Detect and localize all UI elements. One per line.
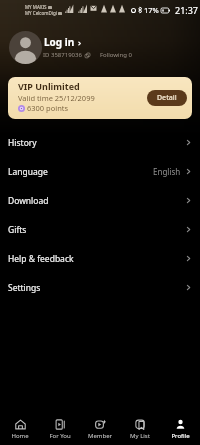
staticText: Settings [8,282,41,294]
button[interactable]: Profile [160,419,200,440]
staticText: Download [8,195,49,207]
staticText: 21:37 [175,4,199,16]
other: Copy ID [85,53,90,58]
button[interactable]: Language [0,157,200,186]
staticText: Profile [171,432,190,440]
staticText: 6300 points [27,103,69,113]
staticText: Gifts [8,224,27,236]
staticText: 17% [144,5,159,15]
staticText: ID 358719036 [43,51,82,59]
button[interactable]: My List [120,419,160,440]
button[interactable]: For You [40,419,80,440]
staticText: MY MAXIS [25,4,47,10]
staticText: English [153,166,181,177]
staticText: Help & feedback [8,253,74,265]
staticText: MY CelcomDigi [25,10,57,16]
staticText: Member [88,432,112,440]
staticText: Home [11,432,29,440]
staticText: For You [49,432,71,440]
staticText: My List [130,432,150,440]
button[interactable]: Settings [0,273,200,302]
button[interactable]: Log in [0,31,200,65]
staticText: Language [8,166,48,178]
staticText: Valid time 25/12/2099 [18,93,95,103]
button[interactable]: Help & feedback [0,244,200,273]
button[interactable]: Home [0,419,40,440]
staticText: Log in [44,35,75,49]
staticText: Detail [157,93,177,103]
button[interactable]: Download [0,186,200,215]
staticText: VIP Unlimited [18,80,80,92]
button[interactable]: History [0,128,200,157]
staticText: History [8,137,37,149]
button[interactable]: Detail [147,90,187,106]
button[interactable]: Member [80,419,120,440]
button[interactable]: VIP Unlimited [8,77,192,119]
button[interactable]: Gifts [0,215,200,244]
staticText: Following 0 [100,51,133,59]
